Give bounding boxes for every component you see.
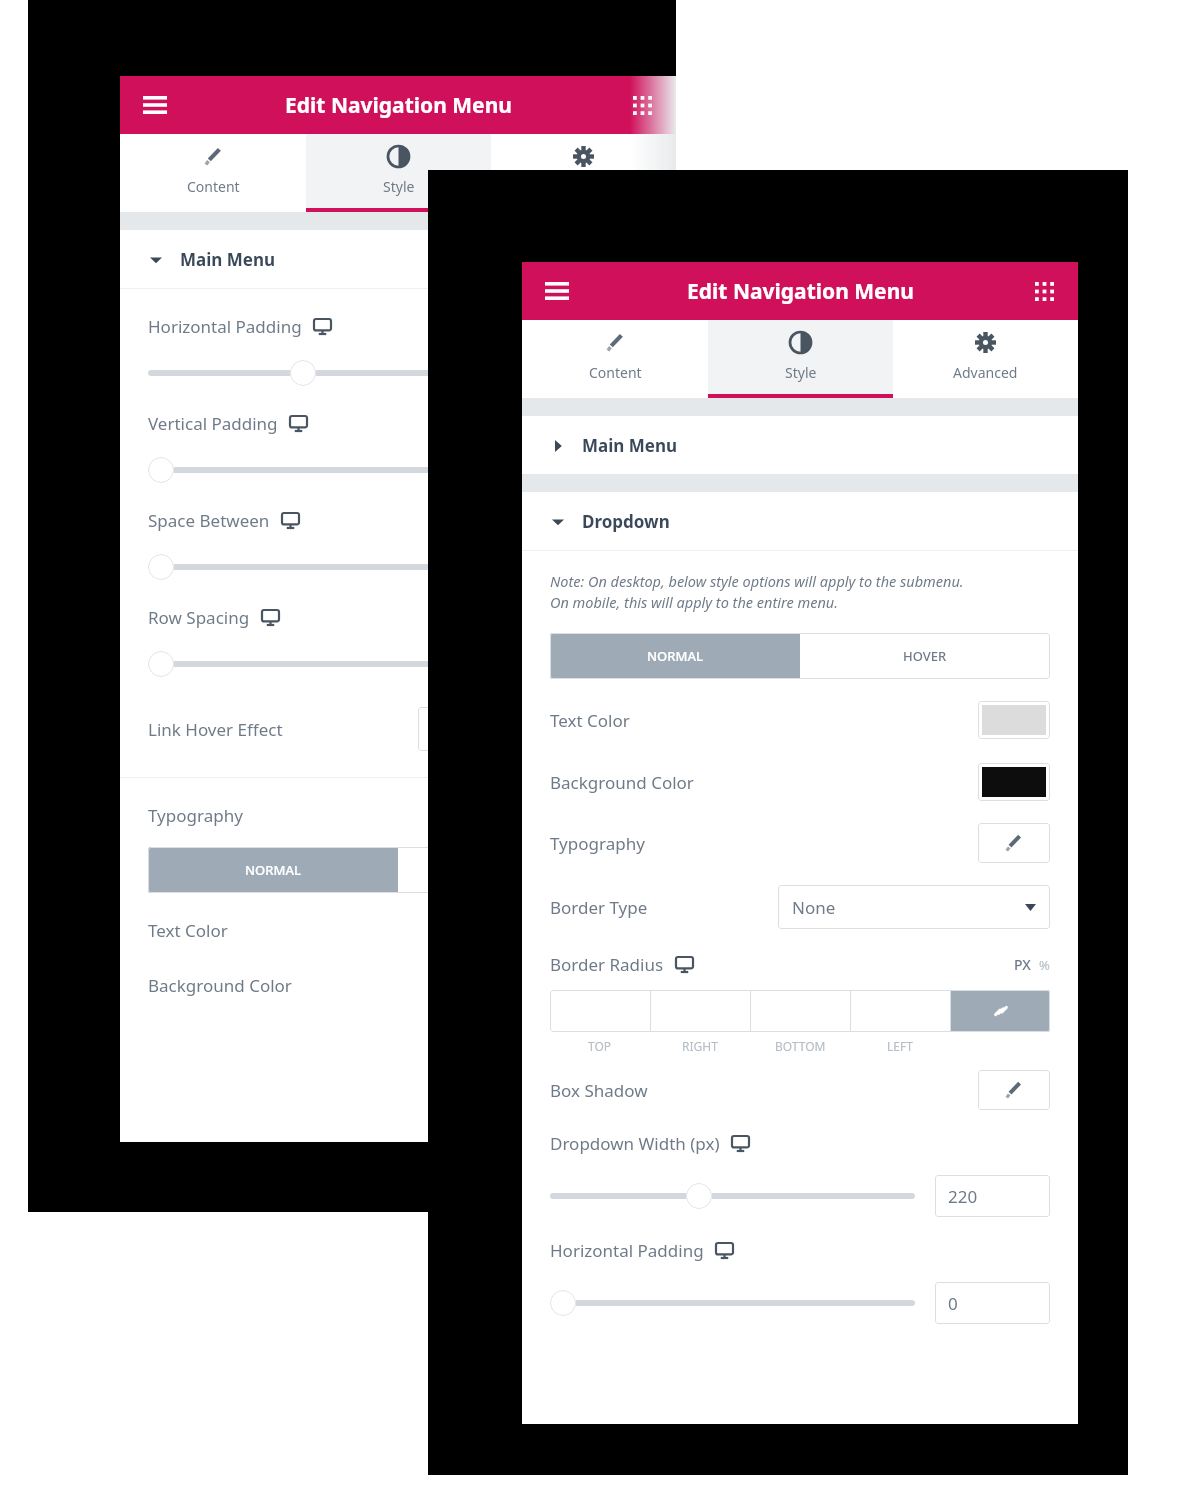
- button[interactable]: None: [418, 707, 648, 751]
- button[interactable]: 0: [935, 1282, 1050, 1324]
- staticText: TOP: [588, 1038, 612, 1054]
- staticText: Edit Navigation Menu: [285, 91, 512, 120]
- button[interactable]: Style: [306, 134, 491, 212]
- button[interactable]: Main Menu: [522, 416, 1078, 474]
- staticText: Content: [589, 363, 642, 382]
- button[interactable]: Content: [522, 320, 708, 398]
- staticText: Text Color: [550, 709, 630, 732]
- button[interactable]: Edit: [978, 1070, 1050, 1110]
- staticText: HOVER: [501, 861, 545, 879]
- staticText: None: [792, 896, 836, 919]
- button[interactable]: NORMAL: [148, 847, 398, 893]
- button[interactable]: Style: [708, 320, 893, 398]
- staticText: Link Hover Effect: [148, 718, 283, 741]
- button[interactable]: Advanced: [893, 320, 1078, 398]
- button[interactable]: [550, 990, 650, 1032]
- staticText: 0: [948, 1292, 958, 1315]
- staticText: RIGHT: [682, 1038, 718, 1054]
- staticText: Background Color: [148, 974, 292, 997]
- button[interactable]: Slider handle: [686, 1183, 712, 1209]
- staticText: NORMAL: [245, 861, 301, 879]
- staticText: Note: On desktop, below style options wi…: [550, 571, 964, 613]
- button[interactable]: PX: [1014, 955, 1031, 974]
- staticText: Advanced: [953, 363, 1018, 382]
- staticText: Typography: [148, 804, 243, 827]
- staticText: Style: [785, 363, 817, 382]
- staticText: Border Type: [550, 896, 648, 919]
- staticText: Typography: [550, 832, 645, 855]
- button[interactable]: HOVER: [800, 633, 1050, 679]
- button[interactable]: Advanced: [491, 134, 676, 212]
- button[interactable]: Dropdown: [522, 492, 1078, 550]
- button[interactable]: [651, 990, 750, 1032]
- staticText: Background Color: [550, 771, 694, 794]
- staticText: 220: [948, 1185, 978, 1208]
- staticText: Text Color: [148, 919, 228, 942]
- staticText: Content: [187, 177, 240, 196]
- button[interactable]: None: [778, 885, 1050, 929]
- button[interactable]: [851, 990, 950, 1032]
- staticText: LEFT: [887, 1038, 913, 1054]
- button[interactable]: Menu: [138, 88, 172, 122]
- staticText: NORMAL: [647, 647, 703, 665]
- staticText: Box Shadow: [550, 1079, 648, 1102]
- button[interactable]: Menu: [540, 274, 574, 308]
- button[interactable]: 220: [935, 1175, 1050, 1217]
- staticText: Vertical Padding: [148, 412, 278, 435]
- button[interactable]: Slider handle: [148, 554, 174, 580]
- staticText: Border Radius: [550, 953, 664, 976]
- button[interactable]: Link values: [951, 990, 1050, 1032]
- button[interactable]: Main Menu: [120, 230, 676, 288]
- staticText: Style: [383, 177, 415, 196]
- staticText: Space Between: [148, 509, 270, 532]
- staticText: Horizontal Padding: [550, 1239, 704, 1262]
- staticText: Row Spacing: [148, 606, 250, 629]
- staticText: Main Menu: [582, 434, 678, 457]
- button[interactable]: Apps: [1028, 275, 1060, 307]
- staticText: HOVER: [903, 647, 947, 665]
- button[interactable]: HOVER: [398, 847, 648, 893]
- staticText: Dropdown: [582, 510, 670, 533]
- button[interactable]: Apps: [626, 89, 658, 121]
- button[interactable]: [751, 990, 850, 1032]
- button[interactable]: %: [1039, 956, 1050, 974]
- button[interactable]: Slider handle: [148, 651, 174, 677]
- button[interactable]: Edit: [978, 823, 1050, 863]
- button[interactable]: NORMAL: [550, 633, 800, 679]
- staticText: Main Menu: [180, 248, 276, 271]
- button[interactable]: Slider handle: [550, 1290, 576, 1316]
- button[interactable]: Slider handle: [148, 457, 174, 483]
- staticText: Edit Navigation Menu: [687, 277, 914, 306]
- staticText: Horizontal Padding: [148, 315, 302, 338]
- staticText: Dropdown Width (px): [550, 1132, 720, 1155]
- button[interactable]: Slider handle: [290, 360, 316, 386]
- button[interactable]: Content: [120, 134, 306, 212]
- staticText: BOTTOM: [775, 1038, 826, 1054]
